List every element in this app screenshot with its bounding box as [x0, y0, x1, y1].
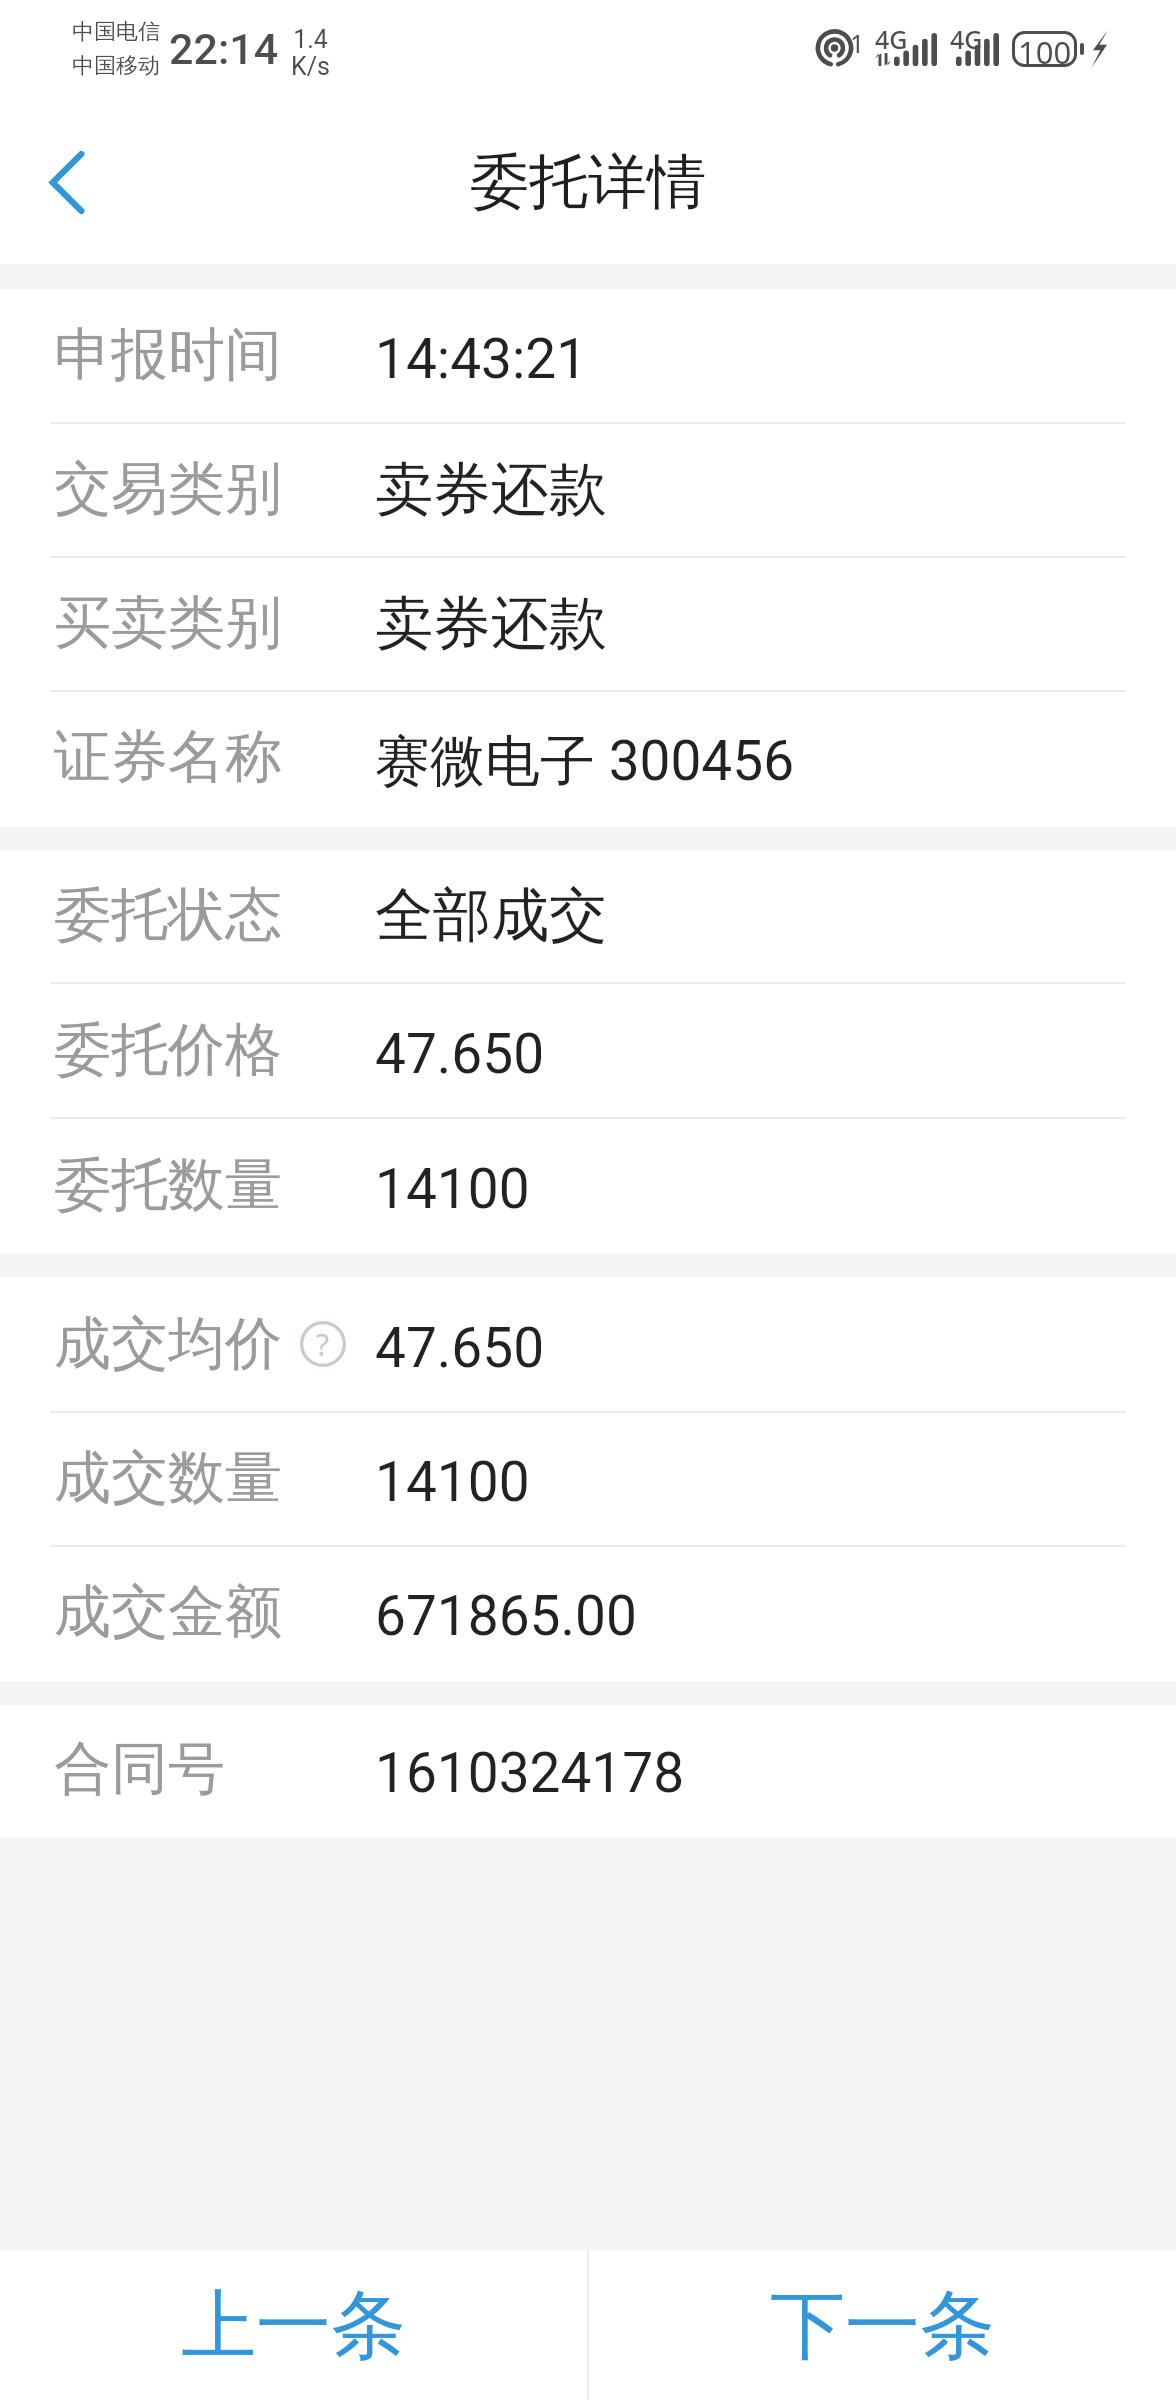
button[interactable]: 证券名称	[0, 692, 1176, 826]
staticText: 47.650	[375, 1022, 545, 1086]
staticText: 成交金额	[54, 1576, 282, 1648]
staticText: 卖券还款	[375, 453, 607, 526]
staticText: 4G	[950, 22, 983, 56]
staticText: 14:43:21	[375, 327, 588, 391]
button[interactable]: 委托价格	[0, 984, 1176, 1119]
staticText: 委托数量	[54, 1149, 282, 1221]
staticText: 委托详情	[470, 145, 706, 219]
button[interactable]: 申报时间	[0, 289, 1176, 424]
staticText: 全部成交	[375, 879, 607, 952]
button[interactable]: Back	[0, 121, 132, 253]
button[interactable]: 下一条	[589, 2251, 1176, 2400]
staticText: 14100	[375, 1157, 530, 1221]
staticText: 1	[850, 26, 865, 60]
staticText: 委托价格	[54, 1014, 282, 1086]
button[interactable]: 委托状态	[0, 850, 1176, 984]
staticText: 22:14	[169, 24, 279, 74]
staticText: 成交均价	[54, 1308, 282, 1380]
staticText: 671865.00	[375, 1584, 637, 1648]
staticText: 上一条	[181, 2279, 406, 2373]
staticText: 委托状态	[54, 879, 282, 951]
button[interactable]: 上一条	[0, 2251, 587, 2400]
button[interactable]: 交易类别	[0, 424, 1176, 558]
button[interactable]: 成交金额	[0, 1547, 1176, 1681]
staticText: 100	[1018, 31, 1072, 67]
staticText: 合同号	[54, 1733, 225, 1805]
staticText: 买卖类别	[54, 587, 282, 659]
staticText: 中国电信 中国移动	[72, 18, 160, 79]
staticText: 申报时间	[54, 319, 282, 391]
staticText: ?	[316, 1324, 330, 1365]
staticText: 卖券还款	[375, 587, 607, 660]
staticText: 1.4 K/s	[291, 25, 330, 81]
staticText: 赛微电子 300456	[375, 727, 795, 796]
button[interactable]: 委托数量	[0, 1119, 1176, 1254]
button[interactable]: 成交数量	[0, 1413, 1176, 1547]
staticText: 交易类别	[54, 453, 282, 525]
staticText: 证券名称	[54, 721, 282, 793]
staticText: 下一条	[770, 2279, 995, 2373]
staticText: 47.650	[375, 1316, 545, 1380]
button[interactable]: Help about average price	[300, 1321, 346, 1367]
staticText: 14100	[375, 1450, 530, 1514]
button[interactable]: 成交均价	[0, 1278, 1176, 1413]
button[interactable]: 合同号	[0, 1705, 1176, 1837]
staticText: 4G	[875, 22, 908, 56]
button[interactable]: 买卖类别	[0, 558, 1176, 692]
staticText: 成交数量	[54, 1442, 282, 1514]
staticText: 1610324178	[375, 1741, 685, 1805]
